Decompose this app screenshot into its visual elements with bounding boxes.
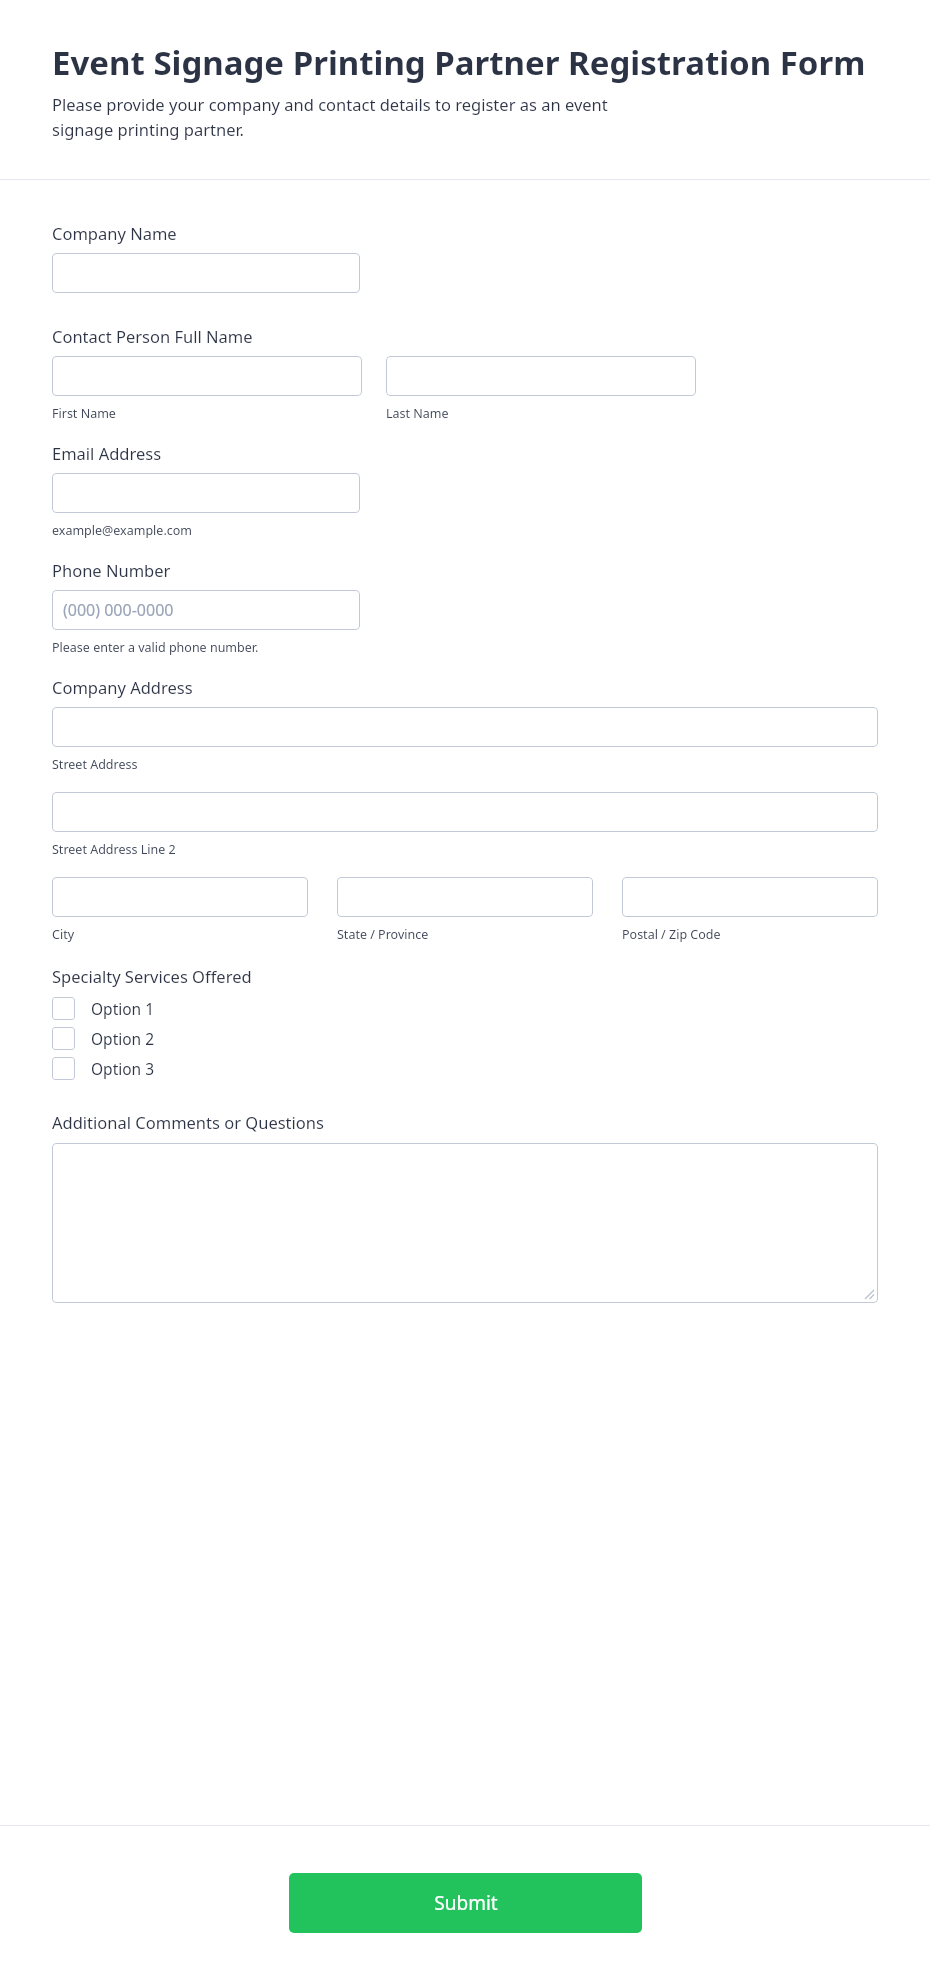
button[interactable]: Submit [289, 1873, 642, 1933]
staticText: Contact Person Full Name [52, 325, 253, 347]
staticText: Email Address [52, 442, 162, 464]
button[interactable]: First Name [52, 356, 362, 396]
button[interactable]: Email Address [52, 473, 360, 513]
button[interactable]: Postal / Zip Code [622, 877, 878, 917]
staticText: Company Name [52, 222, 177, 244]
staticText: State / Province [337, 926, 429, 943]
staticText: (000) 000-0000 [63, 599, 174, 621]
staticText: City [52, 926, 75, 943]
staticText: Additional Comments or Questions [52, 1111, 324, 1133]
button[interactable]: Company Name [52, 253, 360, 293]
staticText: Option 1 [91, 998, 155, 1019]
button[interactable]: State / Province [337, 877, 593, 917]
staticText: Company Address [52, 676, 193, 698]
staticText: Phone Number [52, 559, 171, 581]
staticText: Please provide your company and contact … [52, 93, 672, 141]
button[interactable]: Phone Number [52, 590, 360, 630]
button[interactable]: Additional Comments or Questions [52, 1143, 878, 1303]
staticText: Postal / Zip Code [622, 926, 721, 943]
button[interactable]: Street Address [52, 707, 878, 747]
staticText: First Name [52, 405, 116, 422]
staticText: Option 2 [91, 1028, 155, 1049]
button[interactable]: Option 3 [52, 1053, 155, 1083]
button[interactable]: Last Name [386, 356, 696, 396]
staticText: Street Address [52, 756, 138, 773]
staticText: Last Name [386, 405, 449, 422]
staticText: Specialty Services Offered [52, 965, 252, 987]
button[interactable]: Option 2 [52, 1023, 155, 1053]
button[interactable]: City [52, 877, 308, 917]
button[interactable]: Street Address Line 2 [52, 792, 878, 832]
staticText: Option 3 [91, 1058, 155, 1079]
staticText: Please enter a valid phone number. [52, 639, 259, 656]
staticText: example@example.com [52, 522, 192, 539]
staticText: Event Signage Printing Partner Registrat… [52, 40, 866, 85]
staticText: Street Address Line 2 [52, 841, 176, 858]
staticText: Submit [434, 1890, 498, 1916]
button[interactable]: Option 1 [52, 993, 155, 1023]
